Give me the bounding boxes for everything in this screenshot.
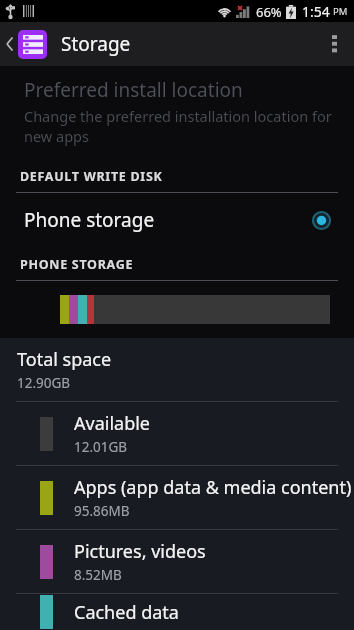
staticText: 8.52MB (74, 566, 122, 584)
staticText: Apps (app data & media content) (74, 475, 352, 500)
staticText: 66% (256, 3, 282, 21)
staticText: Preferred install location (24, 77, 243, 103)
button[interactable]: Apps (app data & media content) (0, 466, 354, 529)
button[interactable]: Preferred install location (0, 66, 354, 159)
button[interactable]: Cached data (0, 594, 354, 630)
staticText: 1:54 (302, 2, 330, 21)
button[interactable]: Total space (0, 338, 354, 401)
staticText: 12.01GB (74, 438, 128, 456)
staticText: Pictures, videos (74, 539, 206, 564)
staticText: 12.90GB (17, 374, 71, 392)
staticText: 95.86MB (74, 502, 130, 520)
button[interactable]: Phone storage (0, 193, 354, 247)
button[interactable]: Available (0, 402, 354, 465)
staticText: PM (333, 5, 348, 18)
button[interactable]: Pictures, videos (0, 530, 354, 593)
staticText: Phone storage (24, 207, 155, 233)
staticText: Available (74, 411, 150, 436)
staticText: Storage (61, 31, 131, 57)
staticText: Change the preferred installation locati… (24, 106, 336, 146)
staticText: DEFAULT WRITE DISK (20, 168, 163, 185)
staticText: PHONE STORAGE (20, 256, 134, 273)
staticText: Cached data (74, 600, 179, 625)
button[interactable]: Navigate up (0, 22, 49, 66)
button[interactable]: More options (314, 22, 354, 66)
staticText: Total space (17, 347, 112, 372)
